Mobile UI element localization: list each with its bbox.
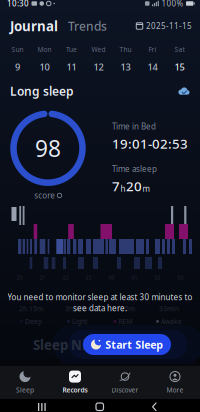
staticText: Sun [11,45,23,54]
staticText: 15 [174,61,184,73]
staticText: 1h 25m [111,304,135,313]
staticText: 3h 47m [65,304,89,313]
staticText: Wed [91,45,105,54]
staticText: see data here. [73,303,127,313]
staticText: 7 [112,177,120,195]
staticText: Time asleep [112,163,157,174]
staticText: Sat [174,45,184,54]
staticText: Tue [66,45,77,54]
staticText: Mon [37,45,51,54]
staticText: Time in Bed [112,121,156,132]
staticText: 01 [131,274,137,281]
staticText: Discover [111,386,138,394]
staticText: More [166,386,183,394]
staticText: 33min [159,304,179,313]
staticText: Trends [68,18,107,34]
staticText: 2025-11-15 [146,21,192,31]
staticText: 12 [93,61,103,73]
staticText: 9 [15,61,20,73]
staticText: Sleep Ni [33,336,86,354]
staticText: Light [72,317,87,326]
button[interactable]: Tue [58,41,85,77]
staticText: 10 [39,61,49,73]
staticText: Fri [148,45,156,54]
staticText: 14 [147,61,157,73]
staticText: Sleep [16,386,34,394]
staticText: Long sleep [10,83,74,99]
button[interactable]: Recent apps [38,403,46,411]
staticText: 03 [177,274,183,281]
staticText: 13 [120,61,130,73]
staticText: Awake [161,317,182,326]
staticText: REM [118,317,132,326]
button[interactable]: Trends [58,18,107,34]
button[interactable]: Thu [112,41,139,77]
staticText: 98 [35,133,61,163]
button[interactable]: Journal [10,17,58,35]
button[interactable]: Choose date [136,21,192,31]
staticText: 22 [62,274,68,281]
button[interactable]: Start Sleep [83,334,171,355]
button[interactable]: Back [152,403,156,411]
button[interactable]: Home [96,403,103,410]
staticText: 00 [108,274,114,281]
staticText: 10:30 [7,0,29,9]
staticText: 11 [66,61,76,73]
staticText: 20 [16,274,22,281]
staticText: 19:01-02:53 [112,135,188,152]
button[interactable]: Discover [100,366,150,399]
staticText: 02 [154,274,160,281]
staticText: score [34,190,55,201]
button[interactable]: More [150,366,200,399]
button[interactable]: Sleep [0,366,50,399]
staticText: 23 [85,274,91,281]
staticText: You need to monitor sleep at least 30 mi… [7,292,192,302]
button[interactable]: Wed [85,41,112,77]
staticText: 2h 15m [19,304,43,313]
staticText: Journal [10,17,58,35]
staticText: Start Sleep [105,337,163,352]
staticText: Deep [25,317,42,326]
staticText: 100% [161,0,183,9]
staticText: 20 [126,177,142,195]
staticText: m [142,183,149,194]
button[interactable]: Fri [139,41,166,77]
button[interactable]: Records [50,366,100,399]
button[interactable]: Sun [4,41,31,77]
staticText: 21 [39,274,45,281]
button[interactable]: Sat [166,41,193,77]
button[interactable]: Mon [31,41,58,77]
staticText: Thu [119,45,131,54]
staticText: h [120,183,125,194]
staticText: Records [62,386,87,394]
